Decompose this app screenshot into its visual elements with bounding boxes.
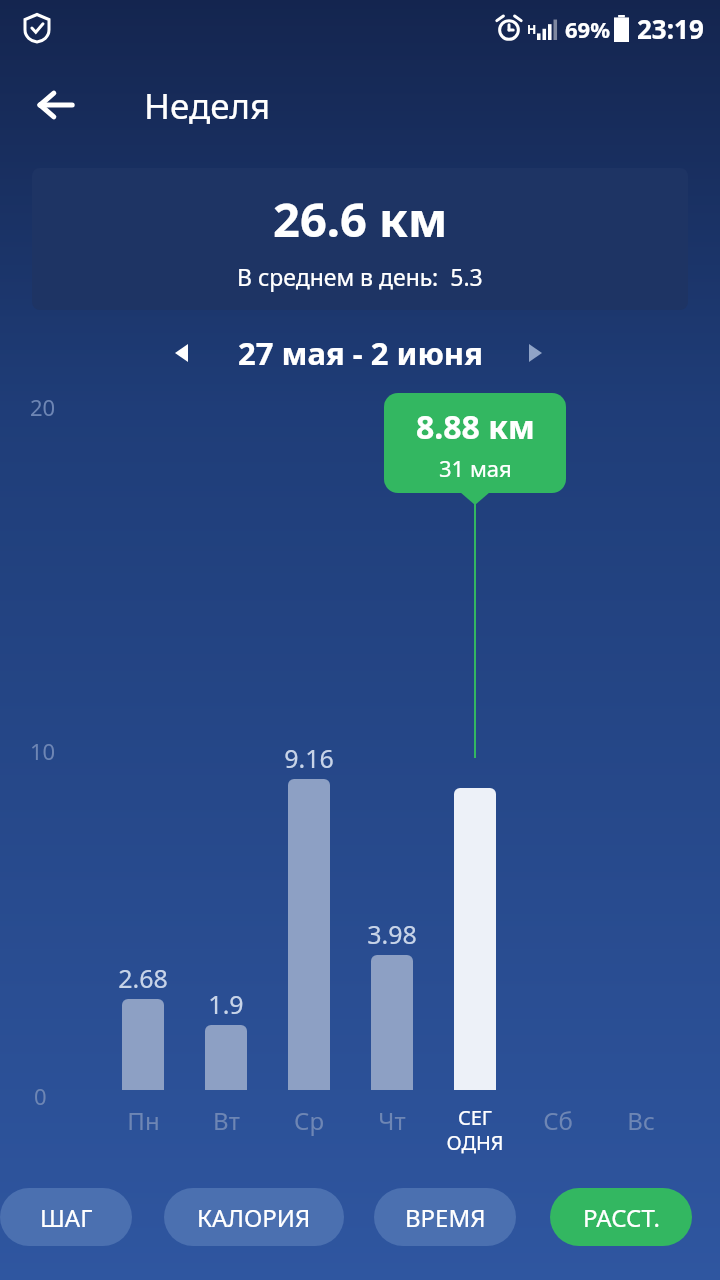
- staticText: Чт: [378, 1104, 406, 1137]
- staticText: 31 мая: [439, 453, 512, 483]
- staticText: Неделя: [144, 82, 271, 130]
- staticText: СЕГ ОДНЯ: [446, 1104, 504, 1156]
- button[interactable]: 26.6 км: [32, 168, 688, 310]
- staticText: В среднем в день: 5.3: [237, 261, 483, 292]
- button[interactable]: Next week: [512, 330, 558, 376]
- staticText: 9.16: [284, 741, 334, 775]
- staticText: Ср: [294, 1104, 324, 1137]
- staticText: 69%: [565, 14, 611, 44]
- button[interactable]: [122, 999, 164, 1090]
- staticText: РАССТ.: [583, 1201, 660, 1234]
- button[interactable]: [288, 779, 330, 1090]
- staticText: Вт: [213, 1104, 240, 1137]
- button[interactable]: [205, 1025, 247, 1090]
- button[interactable]: [454, 788, 496, 1090]
- staticText: 26.6 км: [273, 187, 448, 251]
- button[interactable]: РАССТ.: [550, 1188, 692, 1246]
- staticText: 2.68: [118, 961, 168, 995]
- staticText: 20: [30, 392, 56, 422]
- button[interactable]: ВРЕМЯ: [374, 1188, 516, 1246]
- button[interactable]: ШАГ: [0, 1188, 132, 1246]
- staticText: ВРЕМЯ: [405, 1201, 486, 1234]
- staticText: Сб: [543, 1104, 573, 1137]
- button[interactable]: [371, 955, 413, 1090]
- staticText: 3.98: [367, 917, 417, 951]
- staticText: 27 мая - 2 июня: [238, 332, 483, 374]
- staticText: Вс: [627, 1104, 655, 1137]
- staticText: 0: [34, 1081, 47, 1111]
- staticText: 10: [30, 736, 56, 766]
- staticText: Пн: [127, 1104, 160, 1137]
- staticText: КАЛОРИЯ: [197, 1201, 311, 1234]
- staticText: 23:19: [637, 11, 704, 46]
- staticText: 8.88 км: [416, 405, 535, 449]
- staticText: ШАГ: [40, 1201, 93, 1234]
- button[interactable]: Back: [24, 73, 88, 137]
- button[interactable]: КАЛОРИЯ: [164, 1188, 344, 1246]
- staticText: H: [527, 21, 537, 37]
- button[interactable]: Previous week: [158, 330, 204, 376]
- staticText: 1.9: [208, 987, 244, 1021]
